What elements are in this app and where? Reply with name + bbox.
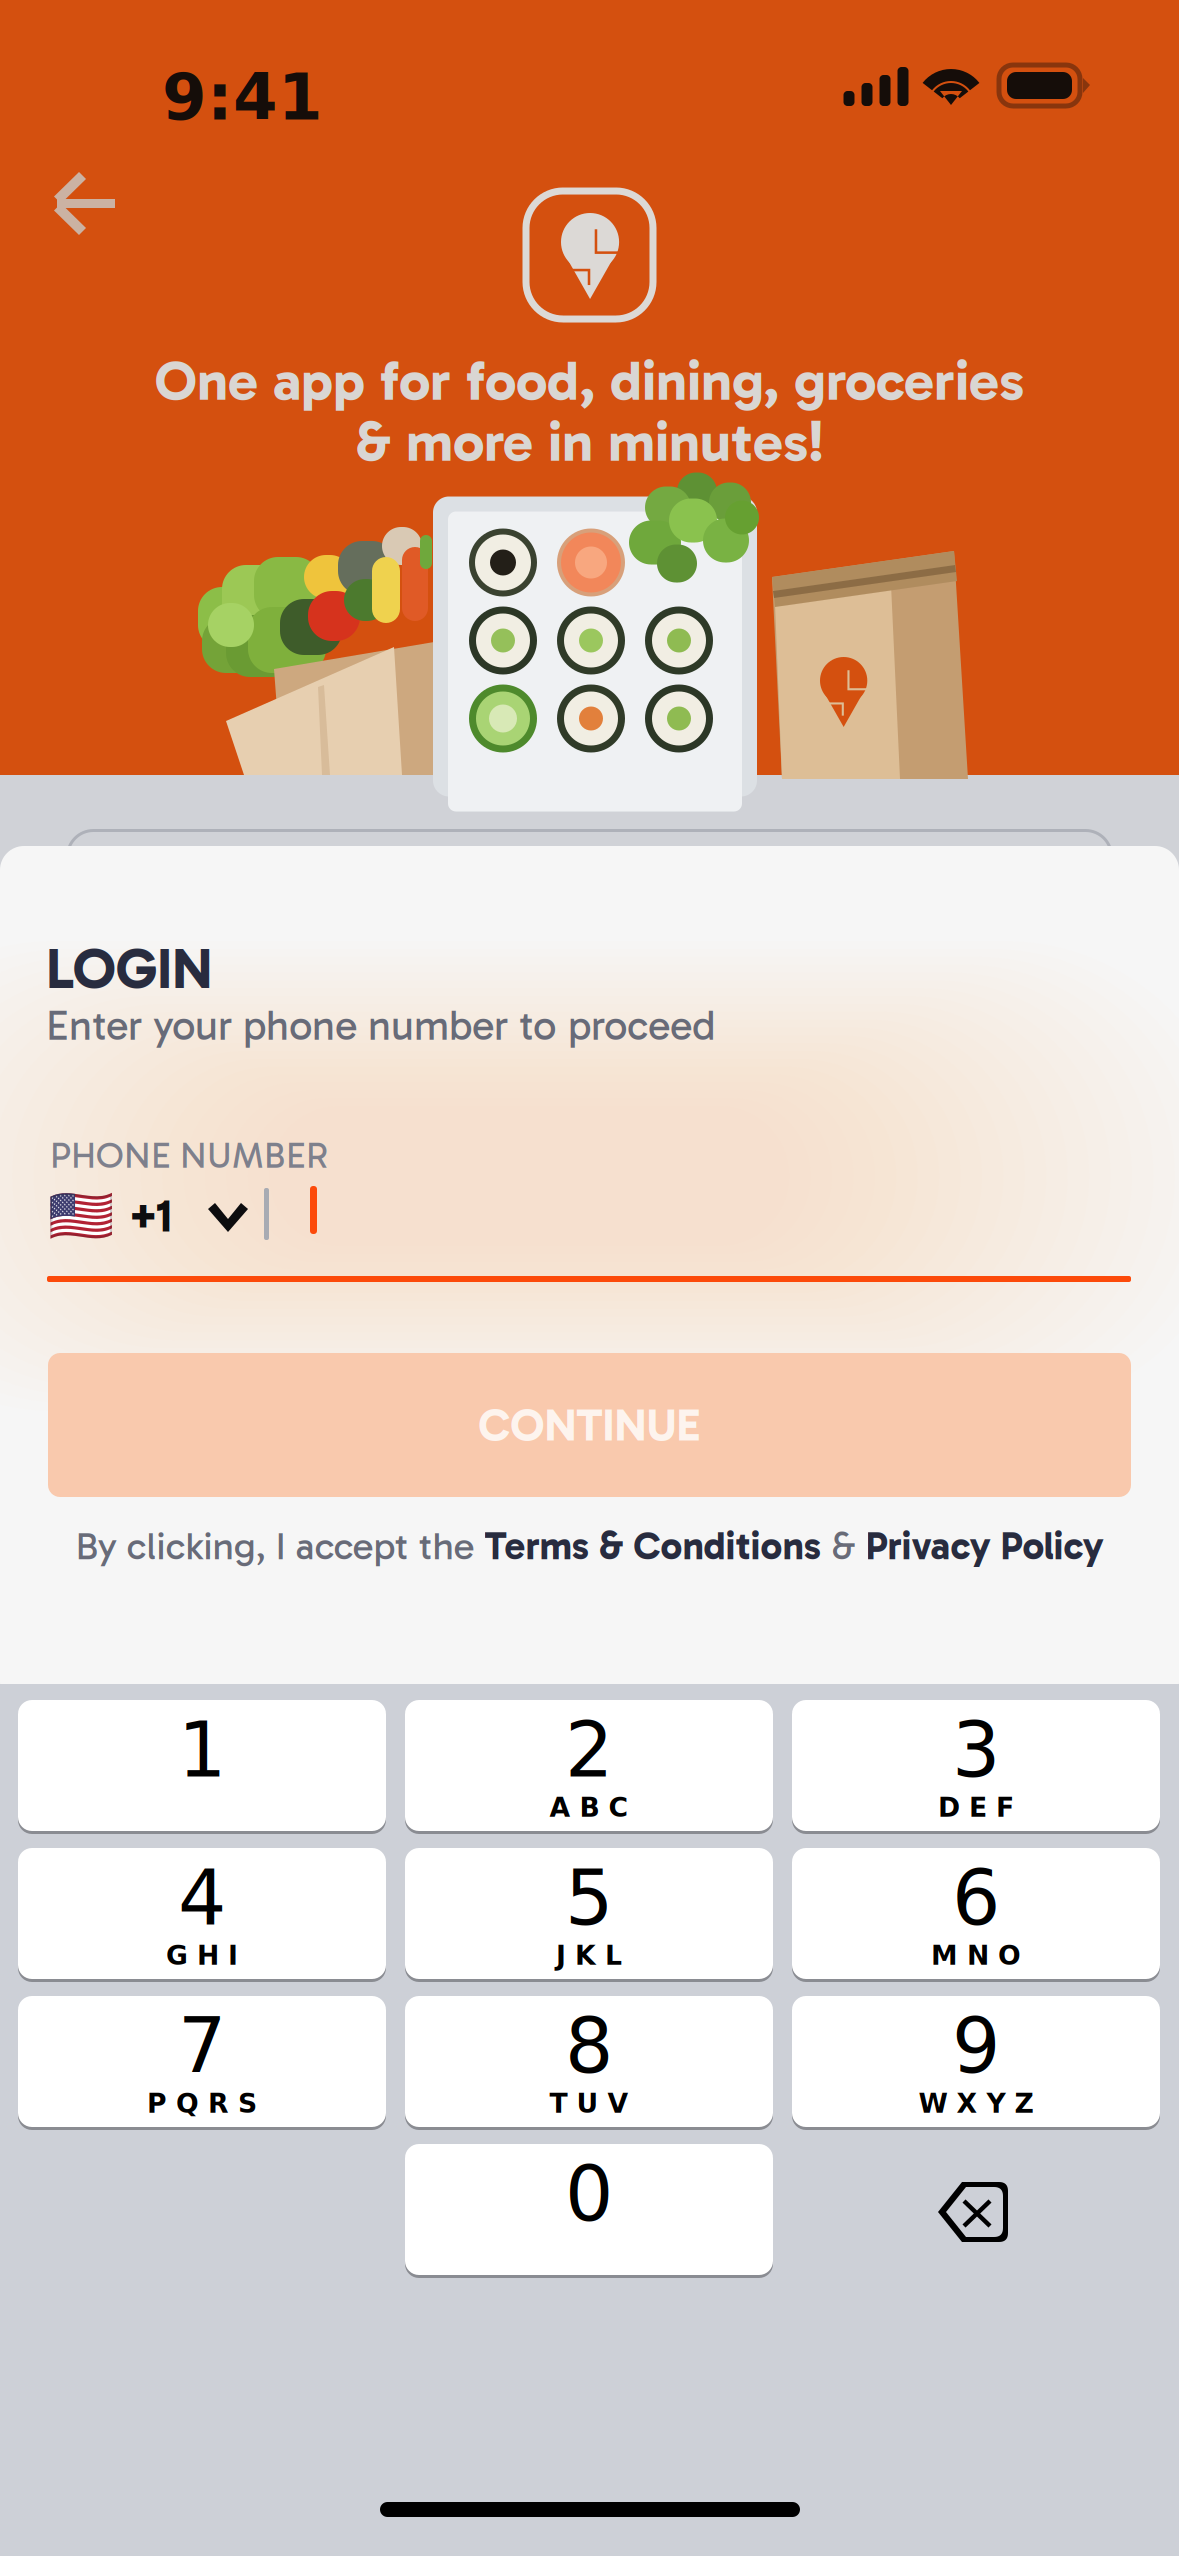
- staticText: J K L: [556, 1940, 622, 1971]
- staticText: D E F: [938, 1792, 1014, 1823]
- button[interactable]: 0: [405, 2144, 773, 2278]
- staticText: LOGIN: [46, 934, 213, 1003]
- button[interactable]: 2: [405, 1700, 773, 1834]
- staticText: Enter your phone number to proceed: [46, 1001, 716, 1051]
- staticText: 5: [565, 1854, 613, 1942]
- staticText: 1: [178, 1706, 226, 1794]
- staticText: W X Y Z: [918, 2088, 1033, 2119]
- staticText: 6: [952, 1854, 1000, 1942]
- staticText: 3: [952, 1706, 1000, 1794]
- staticText: 🇺🇸: [48, 1185, 114, 1247]
- staticText: 0: [565, 2150, 613, 2238]
- staticText: Terms & Conditions: [484, 1523, 820, 1569]
- staticText: &: [820, 1523, 865, 1569]
- staticText: 7: [178, 2002, 226, 2090]
- staticText: G H I: [166, 1940, 238, 1971]
- button[interactable]: 3: [792, 1700, 1160, 1834]
- staticText: M N O: [931, 1940, 1021, 1971]
- staticText: A B C: [549, 1792, 628, 1823]
- staticText: P Q R S: [147, 2088, 257, 2119]
- button[interactable]: 8: [405, 1996, 773, 2130]
- button[interactable]: 7: [18, 1996, 386, 2130]
- staticText: PHONE NUMBER: [50, 1134, 328, 1177]
- staticText: & more in minutes!: [355, 408, 824, 475]
- staticText: Privacy Policy: [865, 1523, 1103, 1569]
- button[interactable]: Privacy Policy: [865, 1523, 1103, 1569]
- staticText: One app for food, dining, groceries: [155, 347, 1024, 414]
- button[interactable]: 4: [18, 1848, 386, 1982]
- staticText: CONTINUE: [478, 1398, 700, 1452]
- staticText: 2: [565, 1706, 613, 1794]
- button[interactable]: Terms & Conditions: [484, 1523, 820, 1569]
- staticText: +1: [128, 1189, 173, 1243]
- button[interactable]: Delete: [792, 2144, 1160, 2278]
- button[interactable]: 9: [792, 1996, 1160, 2130]
- button[interactable]: 1: [18, 1700, 386, 1834]
- staticText: By clicking, I accept the: [75, 1523, 484, 1569]
- button[interactable]: CONTINUE: [48, 1353, 1131, 1497]
- button[interactable]: Back: [52, 172, 116, 235]
- button[interactable]: 6: [792, 1848, 1160, 1982]
- staticText: 9: [952, 2002, 1000, 2090]
- staticText: 4: [178, 1854, 226, 1942]
- staticText: 8: [565, 2002, 613, 2090]
- staticText: T U V: [549, 2088, 628, 2119]
- staticText: 9:41: [162, 60, 323, 134]
- button[interactable]: 5: [405, 1848, 773, 1982]
